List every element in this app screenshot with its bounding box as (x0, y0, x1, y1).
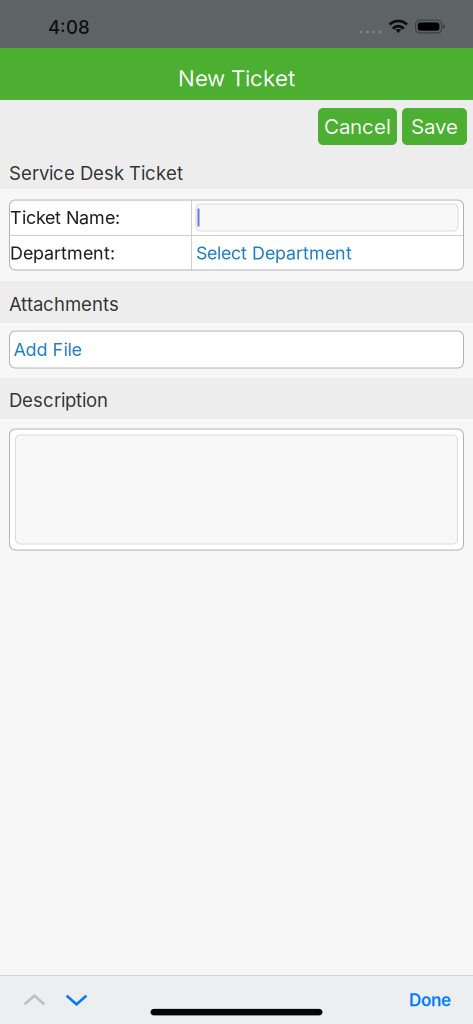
staticText: Department: (10, 242, 115, 264)
staticText: Done (409, 990, 451, 1010)
staticText: New Ticket (178, 64, 295, 91)
staticText: Ticket Name: (10, 207, 120, 228)
staticText: Select Department (196, 242, 352, 264)
staticText: 4:08 (48, 16, 90, 38)
button[interactable] (9, 429, 463, 550)
staticText: Cancel (324, 114, 391, 139)
button[interactable]: Add File (9, 331, 463, 368)
staticText: Add File (13, 339, 81, 360)
staticText: Save (411, 114, 458, 139)
staticText: Attachments (9, 293, 119, 315)
button[interactable]: Next field (61, 990, 92, 1010)
button[interactable]: Previous field (19, 990, 50, 1010)
button[interactable]: Save (402, 108, 467, 145)
staticText: Description (9, 389, 108, 411)
button[interactable]: Done (405, 989, 455, 1011)
button[interactable]: Cancel (318, 108, 397, 145)
button[interactable]: Department: (9, 236, 463, 270)
button[interactable]: Ticket Name: (9, 200, 463, 235)
staticText: Service Desk Ticket (9, 162, 183, 184)
